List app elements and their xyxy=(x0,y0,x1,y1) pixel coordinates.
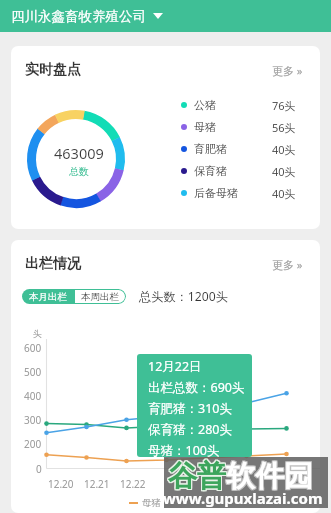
staticText: 12.20 xyxy=(48,477,74,491)
staticText: 软件园 xyxy=(225,457,312,494)
button[interactable]: 母猪 xyxy=(181,116,296,138)
staticText: 母猪 xyxy=(194,120,216,134)
staticText: 200 xyxy=(24,437,42,451)
staticText: 保育猪：280头 xyxy=(148,421,232,438)
staticText: 育肥猪：310头 xyxy=(148,400,232,417)
staticText: 头 xyxy=(33,328,42,339)
staticText: 软件园 xyxy=(227,459,314,496)
staticText: 出栏情况 xyxy=(25,255,81,273)
staticText: 软件园 xyxy=(226,459,313,496)
staticText: 12.21 xyxy=(84,477,110,491)
staticText: 软件园 xyxy=(227,457,314,494)
staticText: 500 xyxy=(24,365,42,379)
staticText: 软件园 xyxy=(225,458,312,495)
staticText: 实时盘点 xyxy=(25,61,81,79)
button[interactable]: 公猪 xyxy=(181,94,296,116)
staticText: 更多 » xyxy=(272,63,303,78)
staticText: 300 xyxy=(24,413,42,427)
button[interactable]: 更多 » xyxy=(272,257,303,272)
button[interactable]: 后备母猪 xyxy=(181,182,296,204)
staticText: 谷普 xyxy=(169,457,227,494)
staticText: 后备母猪 xyxy=(194,186,238,200)
staticText: 谷普 xyxy=(169,459,227,496)
staticText: 12.22 xyxy=(120,477,146,491)
button[interactable]: 更多 » xyxy=(272,63,303,78)
staticText: 母猪：100头 xyxy=(148,442,220,457)
staticText: 总数 xyxy=(69,165,89,178)
staticText: 出栏总数：690头 xyxy=(148,379,245,396)
staticText: 保育猪 xyxy=(194,164,227,178)
staticText: www.gupuxlazai.com xyxy=(163,488,323,508)
button[interactable]: 本周出栏 xyxy=(74,289,126,304)
staticText: 谷普 xyxy=(167,459,225,496)
staticText: 谷普 xyxy=(167,458,225,495)
button[interactable]: 本月出栏 xyxy=(22,289,74,304)
staticText: 谷普 xyxy=(168,457,226,494)
staticText: 谷普 xyxy=(168,458,226,495)
staticText: 软件园 xyxy=(225,459,312,496)
staticText: 56头 xyxy=(272,120,296,135)
staticText: 40头 xyxy=(272,186,296,201)
staticText: 40头 xyxy=(272,142,296,157)
staticText: 40头 xyxy=(272,164,296,179)
button[interactable]: 四川永鑫畜牧养殖公司 xyxy=(0,0,331,32)
staticText: 更多 » xyxy=(272,257,303,272)
staticText: 总头数：1200头 xyxy=(139,288,228,305)
staticText: 400 xyxy=(24,389,42,403)
staticText: 公猪 xyxy=(194,98,216,112)
button[interactable]: 保育猪 xyxy=(181,160,296,182)
staticText: 软件园 xyxy=(226,458,313,495)
button[interactable]: 育肥猪 xyxy=(181,138,296,160)
staticText: 本周出栏 xyxy=(81,291,119,303)
staticText: 463009 xyxy=(54,143,104,163)
staticText: 软件园 xyxy=(226,457,313,494)
staticText: 本月出栏 xyxy=(29,291,67,303)
staticText: 软件园 xyxy=(227,458,314,495)
staticText: 12月22日 xyxy=(148,358,202,375)
staticText: 谷普 xyxy=(169,458,227,495)
staticText: 四川永鑫畜牧养殖公司 xyxy=(11,8,146,25)
staticText: 600 xyxy=(24,341,42,355)
staticText: 母猪 xyxy=(142,497,161,509)
staticText: 谷普 xyxy=(168,459,226,496)
staticText: 0 xyxy=(36,462,42,476)
staticText: 育肥猪 xyxy=(194,142,227,156)
staticText: 76头 xyxy=(272,98,296,113)
staticText: 谷普 xyxy=(167,457,225,494)
